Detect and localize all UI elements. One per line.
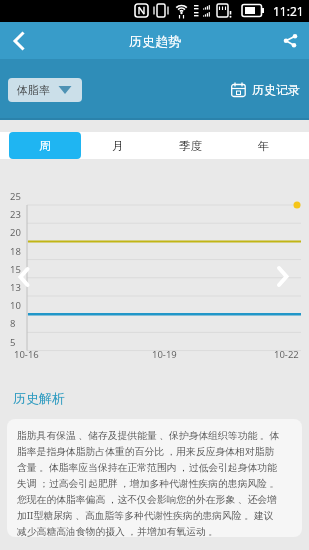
staticText: 10-22: [274, 348, 299, 361]
staticText: 历史解析: [13, 390, 65, 406]
button[interactable]: [272, 22, 309, 59]
staticText: 季度: [179, 139, 202, 153]
staticText: 脂肪具有保温 、储存及提供能量 、保护身体组织等功能 。体 脂率是指身体脂肪占体…: [17, 429, 280, 537]
button[interactable]: 体脂率: [8, 78, 82, 102]
button[interactable]: 年: [227, 132, 300, 159]
staticText: 10-19: [152, 348, 177, 361]
staticText: 20: [10, 226, 21, 239]
button[interactable]: 历史记录: [231, 82, 300, 97]
staticText: 历史趋势: [129, 33, 181, 49]
staticText: 11:21: [273, 3, 304, 19]
staticText: 月: [112, 139, 124, 153]
staticText: 25: [10, 190, 21, 203]
staticText: 年: [258, 139, 270, 153]
staticText: 8: [10, 317, 16, 330]
staticText: 历史记录: [252, 82, 300, 97]
staticText: 5: [10, 336, 16, 349]
staticText: 23: [10, 208, 21, 221]
staticText: 体脂率: [17, 83, 50, 97]
button[interactable]: [0, 22, 37, 59]
staticText: 周: [39, 139, 51, 153]
button[interactable]: 月: [81, 132, 154, 159]
staticText: 15: [10, 263, 21, 276]
staticText: 18: [10, 245, 21, 258]
button[interactable]: 季度: [154, 132, 227, 159]
button[interactable]: 周: [9, 132, 81, 159]
staticText: 10-16: [14, 348, 39, 361]
button[interactable]: [271, 261, 299, 293]
staticText: 10: [10, 299, 21, 312]
button[interactable]: [10, 261, 38, 293]
staticText: 13: [10, 281, 21, 294]
